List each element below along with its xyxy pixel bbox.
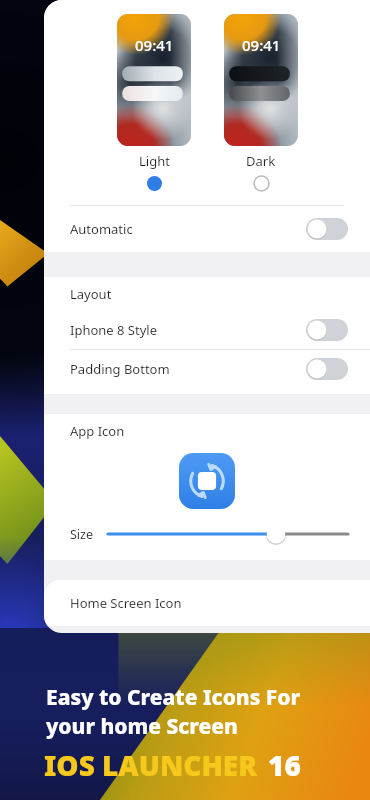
button[interactable]: App icon	[179, 453, 235, 509]
staticText: Light	[139, 152, 170, 170]
staticText: Padding Bottom	[70, 360, 170, 378]
button[interactable]: Home Screen Icon	[44, 580, 370, 626]
button[interactable]: Size slider	[108, 523, 348, 545]
staticText: Size	[70, 526, 94, 543]
staticText: 09:41	[242, 35, 281, 55]
staticText: your home Screen	[46, 712, 238, 741]
staticText: Easy to Create Icons For	[46, 683, 301, 712]
staticText: Dark	[246, 152, 276, 170]
button[interactable]: Toggle	[306, 218, 348, 240]
staticText: Automatic	[70, 220, 133, 238]
button[interactable]: Padding Bottom	[44, 350, 370, 388]
staticText: Layout	[70, 285, 112, 303]
staticText: IOS LAUNCHER	[44, 746, 258, 784]
staticText: App Icon	[70, 422, 125, 440]
button[interactable]: Iphone 8 Style	[44, 311, 370, 349]
staticText: 16	[268, 746, 301, 784]
button[interactable]: Toggle	[306, 358, 348, 380]
staticText: Home Screen Icon	[70, 594, 182, 612]
button[interactable]: 09:41	[224, 14, 298, 192]
staticText: 09:41	[135, 35, 174, 55]
staticText: Iphone 8 Style	[70, 321, 158, 339]
button[interactable]: 09:41	[117, 14, 191, 192]
button[interactable]: Toggle	[306, 319, 348, 341]
button[interactable]: Automatic	[44, 206, 370, 252]
